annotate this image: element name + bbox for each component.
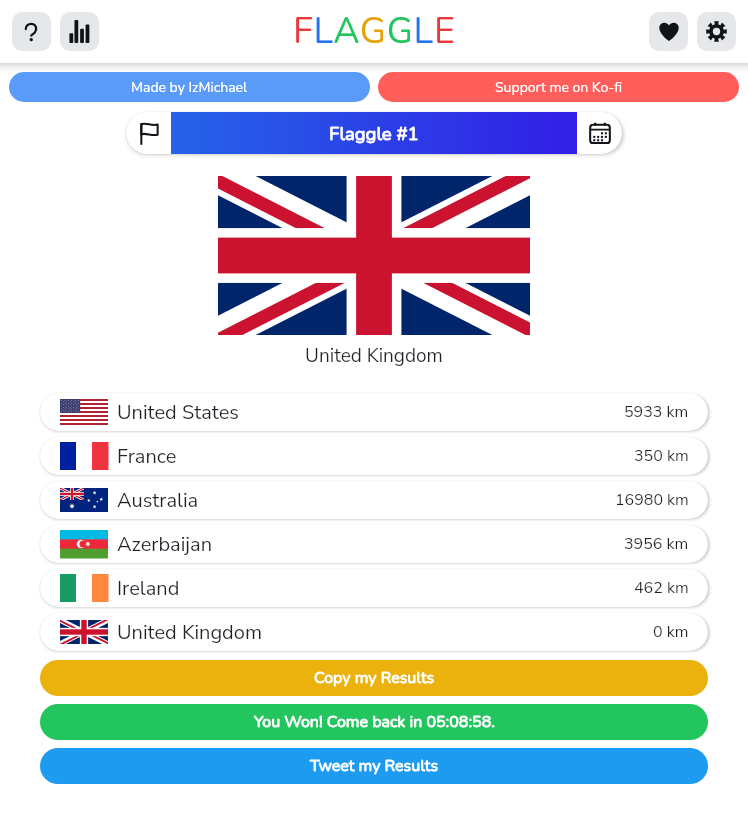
button[interactable]: Made by IzMichael — [9, 72, 370, 102]
staticText: 5933 km — [624, 401, 689, 423]
button[interactable]: Help — [12, 12, 51, 51]
staticText: 350 km — [634, 445, 689, 467]
button[interactable]: United States — [40, 393, 708, 431]
staticText: Made by IzMichael — [131, 78, 248, 97]
staticText: Australia — [117, 487, 199, 514]
staticText: United Kingdom — [117, 619, 263, 646]
staticText: Copy my Results — [314, 667, 435, 689]
staticText: France — [117, 443, 177, 470]
staticText: 462 km — [634, 577, 689, 599]
staticText: United States — [117, 399, 239, 426]
button[interactable]: Ireland — [40, 569, 708, 607]
staticText: You Won! Come back in 05:08:58. — [254, 711, 495, 733]
button[interactable]: Australia — [40, 481, 708, 519]
button[interactable]: Copy my Results — [40, 660, 708, 696]
staticText: 3956 km — [624, 533, 689, 555]
button[interactable]: Flaggle #1 — [126, 112, 622, 154]
staticText: United Kingdom — [0, 343, 748, 369]
staticText: 16980 km — [615, 489, 689, 511]
button[interactable]: You Won! Come back in 05:08:58. — [40, 704, 708, 740]
staticText: Flaggle #1 — [329, 121, 419, 146]
button[interactable]: Favourite — [649, 12, 688, 51]
button[interactable]: Tweet my Results — [40, 748, 708, 784]
staticText: Azerbaijan — [117, 531, 213, 558]
button[interactable]: Azerbaijan — [40, 525, 708, 563]
button[interactable]: France — [40, 437, 708, 475]
staticText: Tweet my Results — [310, 755, 439, 777]
button[interactable]: United Kingdom — [40, 613, 708, 651]
staticText: FLAGGLE — [293, 7, 456, 56]
button[interactable]: Support me on Ko-fi — [378, 72, 739, 102]
button[interactable]: Statistics — [60, 12, 99, 51]
staticText: Ireland — [117, 575, 180, 602]
button[interactable]: Settings — [697, 12, 736, 51]
staticText: Support me on Ko-fi — [495, 78, 623, 97]
staticText: 0 km — [653, 621, 689, 643]
